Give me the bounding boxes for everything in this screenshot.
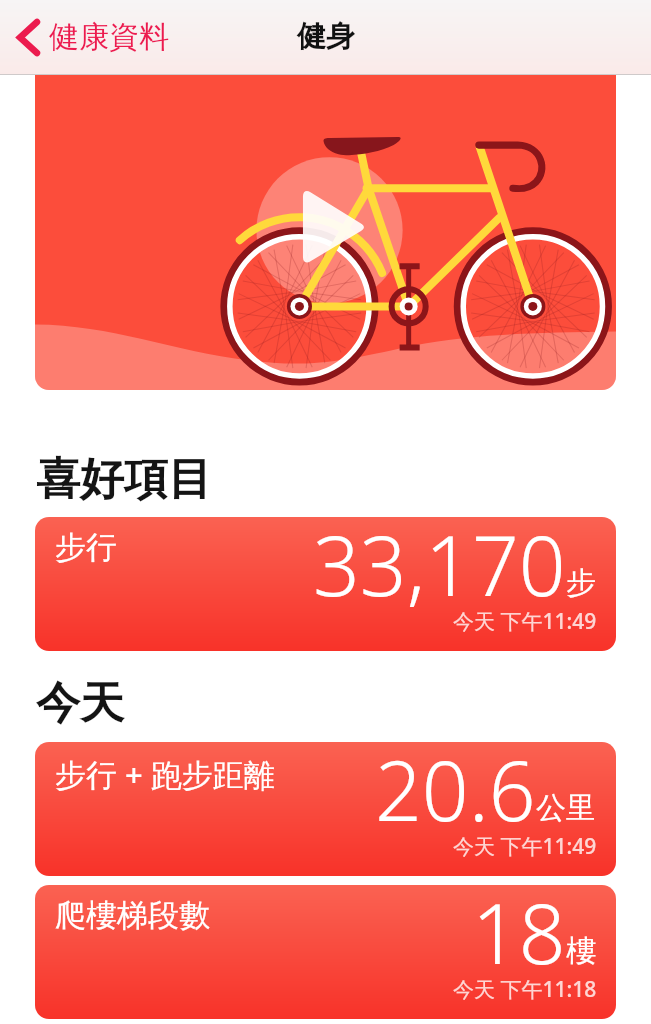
staticText: 18 <box>472 885 566 988</box>
button[interactable]: 步行 <box>35 517 616 651</box>
staticText: 20.6 <box>375 742 536 845</box>
staticText: 今天 <box>36 676 124 731</box>
button[interactable]: 步行 + 跑步距離 <box>35 742 616 876</box>
staticText: 步行 <box>55 528 117 567</box>
staticText: 今天 下午11:18 <box>453 975 597 1004</box>
staticText: 健康資料 <box>49 18 169 56</box>
staticText: 樓 <box>566 932 596 970</box>
staticText: 今天 下午11:49 <box>453 607 597 636</box>
button[interactable]: 健康資料 <box>0 12 179 62</box>
staticText: 公里 <box>536 789 596 827</box>
staticText: 步行 + 跑步距離 <box>55 753 275 795</box>
staticText: 今天 下午11:49 <box>453 832 597 861</box>
button[interactable]: 爬樓梯段數 <box>35 885 616 1019</box>
button[interactable]: Play workout video <box>35 75 616 390</box>
staticText: 步 <box>566 564 596 602</box>
staticText: 33,170 <box>313 517 566 620</box>
staticText: 健身 <box>297 18 355 55</box>
staticText: 喜好項目 <box>36 452 212 507</box>
staticText: 爬樓梯段數 <box>55 896 210 935</box>
